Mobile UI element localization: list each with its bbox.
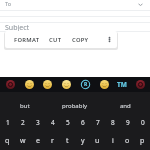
button[interactable]: probably (50, 92, 100, 120)
staticText: 3 (36, 118, 40, 127)
staticText: r (51, 136, 54, 146)
staticText: R (84, 81, 88, 88)
button[interactable]: 2 (15, 113, 30, 131)
staticText: 8 (111, 118, 115, 127)
staticText: 4 (51, 118, 55, 127)
button[interactable]: Expand recipients (137, 1, 144, 8)
button[interactable]: i (105, 132, 120, 150)
button[interactable]: More options (101, 31, 117, 48)
staticText: q (5, 136, 10, 146)
button[interactable]: t (60, 132, 75, 150)
button[interactable]: Emoji (25, 80, 34, 89)
button[interactable]: w (15, 132, 30, 150)
button[interactable]: Symbols (136, 80, 145, 89)
staticText: 1 (6, 118, 10, 127)
button[interactable] (0, 11, 150, 17)
button[interactable]: Emoji (62, 80, 71, 89)
staticText: probably (62, 102, 88, 110)
staticText: 0 (141, 118, 145, 127)
staticText: t (66, 136, 69, 146)
staticText: p (140, 136, 145, 146)
button[interactable]: e (30, 132, 45, 150)
button[interactable]: R (81, 80, 90, 89)
staticText: 5 (66, 118, 70, 127)
staticText: y (81, 136, 85, 146)
staticText: 2 (21, 118, 25, 127)
staticText: CUT (49, 36, 62, 44)
button[interactable]: u (90, 132, 105, 150)
staticText: but (20, 102, 30, 110)
button[interactable]: o (120, 132, 135, 150)
button[interactable]: Subject (0, 23, 150, 31)
button[interactable]: TM (117, 80, 127, 89)
staticText: e (36, 136, 40, 146)
button[interactable]: 6 (75, 113, 90, 131)
staticText: 6 (81, 118, 85, 127)
button[interactable]: 4 (45, 113, 60, 131)
staticText: o (125, 136, 130, 146)
staticText: FORMAT (14, 36, 40, 44)
button[interactable]: Recent (6, 80, 15, 89)
button[interactable]: y (75, 132, 90, 150)
button[interactable]: q (0, 132, 15, 150)
staticText: w (20, 136, 26, 146)
staticText: and (120, 102, 131, 110)
button[interactable]: 3 (30, 113, 45, 131)
button[interactable]: but (0, 92, 50, 120)
staticText: i (112, 136, 114, 146)
button[interactable]: p (135, 132, 150, 150)
button[interactable]: r (45, 132, 60, 150)
button[interactable]: To (0, 0, 150, 10)
staticText: To (5, 0, 12, 7)
button[interactable]: CUT (41, 31, 69, 48)
button[interactable]: COPY (66, 31, 94, 48)
staticText: 7 (96, 118, 100, 127)
button[interactable]: 9 (120, 113, 135, 131)
button[interactable]: 1 (0, 113, 15, 131)
button[interactable]: 8 (105, 113, 120, 131)
staticText: Subject (5, 23, 30, 31)
staticText: COPY (72, 36, 89, 44)
button[interactable]: Emoji (100, 80, 109, 89)
staticText: u (95, 136, 100, 146)
staticText: 9 (126, 118, 130, 127)
button[interactable]: 0 (135, 113, 150, 131)
button[interactable]: FORMAT (13, 31, 41, 48)
button[interactable]: 5 (60, 113, 75, 131)
button[interactable]: 7 (90, 113, 105, 131)
button[interactable]: Emoji (43, 80, 52, 89)
staticText: TM (117, 80, 127, 89)
button[interactable]: and (100, 92, 150, 120)
